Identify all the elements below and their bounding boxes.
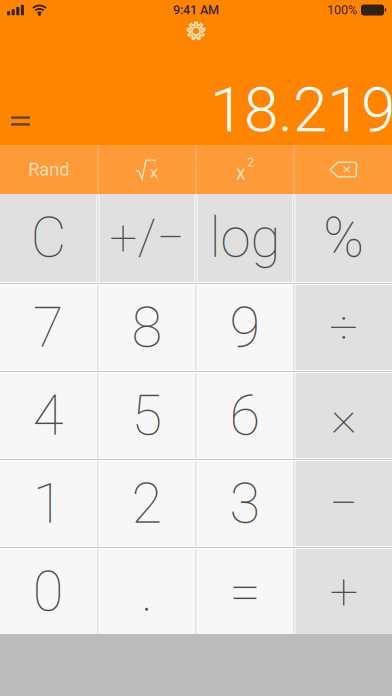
button[interactable]: ÷	[295, 285, 392, 370]
button[interactable]: ×	[295, 373, 392, 458]
staticText: 9:41 AM	[173, 3, 219, 17]
staticText: 0	[33, 559, 64, 624]
staticText: 18.219	[210, 74, 392, 146]
staticText: ×	[331, 386, 357, 445]
button[interactable]: 7	[0, 285, 96, 370]
staticText: 9	[229, 295, 260, 360]
staticText: 2	[131, 471, 162, 536]
button[interactable]: +/−	[99, 194, 194, 282]
staticText: C	[31, 206, 66, 270]
button[interactable]: x squared	[196, 145, 293, 194]
staticText: Rand	[28, 159, 69, 180]
staticText: 8	[131, 295, 162, 360]
button[interactable]: log	[197, 194, 292, 282]
staticText: +	[330, 562, 358, 621]
staticText: 1	[33, 471, 64, 536]
button[interactable]: 5	[99, 373, 194, 458]
staticText: +/−	[109, 209, 184, 267]
staticText: ÷	[329, 298, 358, 357]
staticText: 4	[33, 383, 64, 448]
staticText: %	[323, 206, 364, 270]
button[interactable]: −	[295, 461, 392, 546]
staticText: 5	[131, 383, 162, 448]
button[interactable]: .	[99, 549, 194, 634]
button[interactable]: 2	[99, 461, 194, 546]
button[interactable]: %	[295, 194, 392, 282]
staticText: 2	[247, 155, 254, 169]
staticText: log	[209, 206, 280, 270]
button[interactable]: 1	[0, 461, 96, 546]
staticText: x	[149, 162, 158, 182]
button[interactable]: History	[0, 0, 30, 129]
staticText: −	[329, 474, 358, 533]
staticText: =	[229, 559, 260, 624]
button[interactable]: =	[197, 549, 292, 634]
staticText: .	[141, 559, 153, 624]
button[interactable]: Square root	[98, 145, 195, 194]
button[interactable]: C	[0, 194, 96, 282]
staticText: 7	[33, 295, 64, 360]
button[interactable]: Delete	[294, 145, 392, 194]
staticText: 3	[229, 471, 260, 536]
staticText: 100%	[327, 3, 357, 17]
button[interactable]: Rand	[0, 145, 97, 194]
staticText: x	[236, 162, 246, 184]
button[interactable]: 6	[197, 373, 292, 458]
button[interactable]: Settings	[185, 20, 207, 42]
button[interactable]: 4	[0, 373, 96, 458]
button[interactable]: 8	[99, 285, 194, 370]
button[interactable]: 3	[197, 461, 292, 546]
button[interactable]: 9	[197, 285, 292, 370]
staticText: 6	[229, 383, 260, 448]
button[interactable]: 0	[0, 549, 96, 634]
button[interactable]: +	[295, 549, 392, 634]
